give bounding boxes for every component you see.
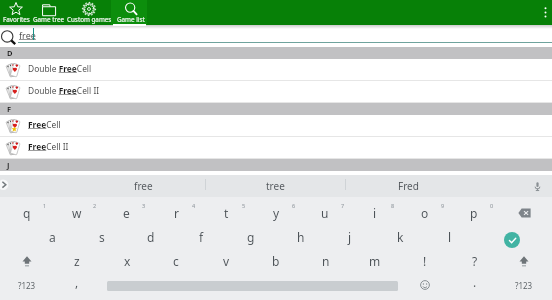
staticText: p <box>470 205 478 221</box>
staticText: 2 <box>93 202 97 209</box>
button[interactable]: More suggestions <box>0 175 14 197</box>
button[interactable]: n <box>301 249 351 273</box>
staticText: ?123 <box>515 280 533 291</box>
staticText: j <box>348 229 352 245</box>
button[interactable]: g <box>226 225 276 249</box>
button[interactable]: v <box>201 249 251 273</box>
button[interactable]: o <box>400 201 450 225</box>
staticText: k <box>397 229 404 245</box>
button[interactable]: k <box>375 225 425 249</box>
button[interactable]: z <box>52 249 102 273</box>
staticText: FreeCell II <box>28 141 69 152</box>
button[interactable]: f <box>176 225 226 249</box>
button[interactable]: w <box>52 201 102 225</box>
staticText: u <box>321 205 329 221</box>
button[interactable]: u <box>300 201 350 225</box>
staticText: x <box>124 253 131 269</box>
staticText: 3 <box>142 202 146 209</box>
staticText: Game tree <box>33 15 65 24</box>
button[interactable]: , <box>52 273 102 297</box>
button[interactable]: Shift <box>2 249 52 273</box>
button[interactable]: More options <box>538 0 552 25</box>
staticText: r <box>174 205 179 221</box>
staticText: ! <box>423 253 427 269</box>
staticText: g <box>247 229 255 245</box>
button[interactable]: l <box>425 225 475 249</box>
button[interactable] <box>0 0 32 25</box>
staticText: v <box>223 253 230 269</box>
staticText: 4 <box>192 202 196 209</box>
staticText: Favorites <box>3 15 30 24</box>
staticText: q <box>23 205 31 221</box>
button[interactable]: tree <box>220 175 330 197</box>
button[interactable]: m <box>350 249 400 273</box>
button[interactable]: j <box>325 225 375 249</box>
button[interactable]: ! <box>400 249 450 273</box>
staticText: free <box>19 29 36 41</box>
button[interactable]: Double FreeCell II <box>0 81 552 102</box>
button[interactable]: free <box>88 175 198 197</box>
button[interactable]: ?123 <box>2 273 52 297</box>
button[interactable]: d <box>126 225 176 249</box>
staticText: 9 <box>441 202 445 209</box>
staticText: y <box>273 205 280 221</box>
button[interactable]: Double FreeCell <box>0 59 552 80</box>
staticText: Double FreeCell II <box>28 85 100 96</box>
staticText: c <box>173 253 179 269</box>
button[interactable]: ? <box>450 249 500 273</box>
button[interactable]: b <box>251 249 301 273</box>
button[interactable]: p <box>449 201 499 225</box>
staticText: z <box>74 253 80 269</box>
staticText: Double FreeCell <box>28 63 92 74</box>
staticText: 0 <box>490 202 494 209</box>
button[interactable]: Backspace <box>499 201 549 225</box>
button[interactable]: . <box>450 273 500 297</box>
button[interactable]: r <box>151 201 201 225</box>
staticText: Custom games <box>67 15 112 24</box>
button[interactable] <box>111 0 151 25</box>
staticText: 8 <box>391 202 395 209</box>
button[interactable]: c <box>151 249 201 273</box>
staticText: ? <box>472 253 478 269</box>
staticText: f <box>199 229 204 245</box>
staticText: n <box>322 253 330 269</box>
staticText: w <box>72 205 82 221</box>
button[interactable]: e <box>101 201 151 225</box>
button[interactable] <box>66 0 111 25</box>
button[interactable]: FreeCell II <box>0 137 552 158</box>
staticText: D <box>7 48 13 58</box>
button[interactable]: Enter <box>504 232 520 248</box>
button[interactable]: ?123 <box>499 273 549 297</box>
staticText: m <box>369 253 381 269</box>
button[interactable]: x <box>102 249 152 273</box>
button[interactable]: a <box>27 225 77 249</box>
button[interactable]: s <box>77 225 127 249</box>
staticText: FreeCell <box>28 119 61 130</box>
staticText: tree <box>266 179 285 193</box>
staticText: a <box>49 229 56 245</box>
button[interactable]: Shift <box>499 249 549 273</box>
staticText: i <box>373 205 377 221</box>
staticText: t <box>224 205 229 221</box>
staticText: b <box>272 253 280 269</box>
button[interactable] <box>32 0 66 25</box>
button[interactable]: Fred <box>353 175 463 197</box>
staticText: 6 <box>292 202 296 209</box>
button[interactable]: Voice input <box>517 175 552 197</box>
staticText: J <box>7 160 10 170</box>
button[interactable]: h <box>276 225 326 249</box>
button[interactable]: FreeCell <box>0 115 552 136</box>
button[interactable]: y <box>251 201 301 225</box>
staticText: h <box>297 229 305 245</box>
staticText: , <box>75 274 79 290</box>
staticText: F <box>7 104 12 114</box>
staticText: s <box>99 229 105 245</box>
staticText: l <box>448 229 452 245</box>
staticText: 7 <box>341 202 345 209</box>
button[interactable]: t <box>201 201 251 225</box>
button[interactable]: q <box>2 201 52 225</box>
button[interactable]: Emoji <box>400 273 450 297</box>
staticText: Fred <box>398 179 419 193</box>
button[interactable]: i <box>350 201 400 225</box>
